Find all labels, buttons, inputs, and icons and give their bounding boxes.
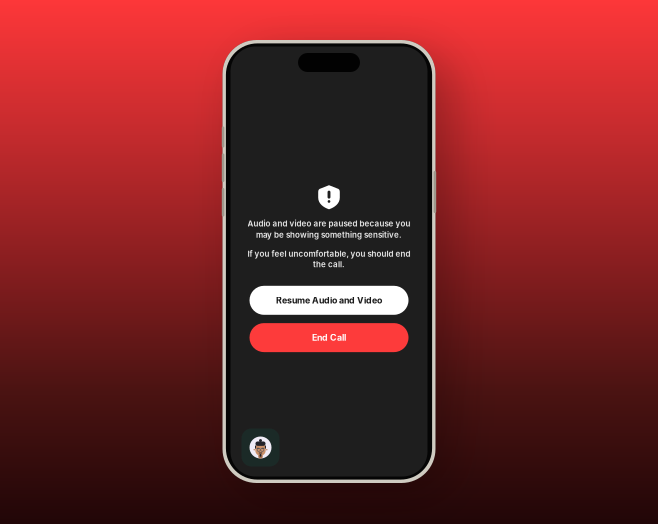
button[interactable]: Resume Audio and Video [249, 286, 408, 315]
button[interactable]: Self view [241, 428, 279, 466]
button[interactable]: End Call [249, 323, 408, 352]
staticText: the call. [313, 259, 345, 269]
staticText: Resume Audio and Video [276, 295, 382, 306]
staticText: End Call [312, 332, 346, 343]
staticText: Audio and video are paused because you [247, 219, 410, 228]
staticText: may be showing something sensitive. [256, 230, 402, 240]
staticText: If you feel uncomfortable, you should en… [247, 249, 410, 259]
